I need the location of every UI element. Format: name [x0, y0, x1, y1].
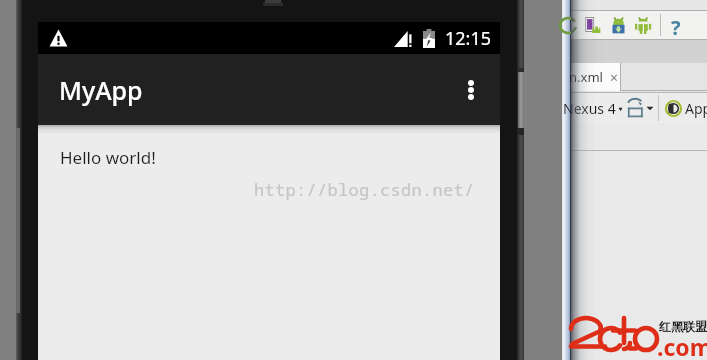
staticText: 红黑联盟: [659, 319, 707, 334]
button[interactable]: AppT: [665, 93, 707, 123]
staticText: Nexus 4: [563, 99, 616, 118]
button[interactable]: n.xml: [571, 63, 620, 91]
button[interactable]: MyApp: [38, 54, 500, 125]
staticText: MyApp: [59, 73, 143, 107]
button[interactable]: More options: [454, 73, 488, 107]
staticText: Hello world!: [60, 146, 156, 169]
button[interactable]: Android Device Monitor: [635, 17, 651, 34]
button[interactable]: Help: [666, 14, 686, 36]
button[interactable]: SDK Manager: [611, 17, 626, 34]
staticText: 12:15: [445, 26, 492, 51]
staticText: ×: [610, 68, 618, 87]
button[interactable]: AVD Manager: [584, 17, 602, 34]
staticText: .com: [657, 331, 707, 360]
button[interactable]: Nexus 4: [563, 93, 623, 123]
button[interactable]: Orientation: [626, 93, 659, 123]
button[interactable]: Run: [571, 17, 577, 34]
staticText: http://blog.csdn.net/: [254, 178, 475, 201]
staticText: n.xml: [569, 68, 603, 86]
staticText: AppT: [685, 99, 707, 118]
staticText: ?: [671, 14, 681, 36]
other: Warning: [49, 29, 68, 47]
